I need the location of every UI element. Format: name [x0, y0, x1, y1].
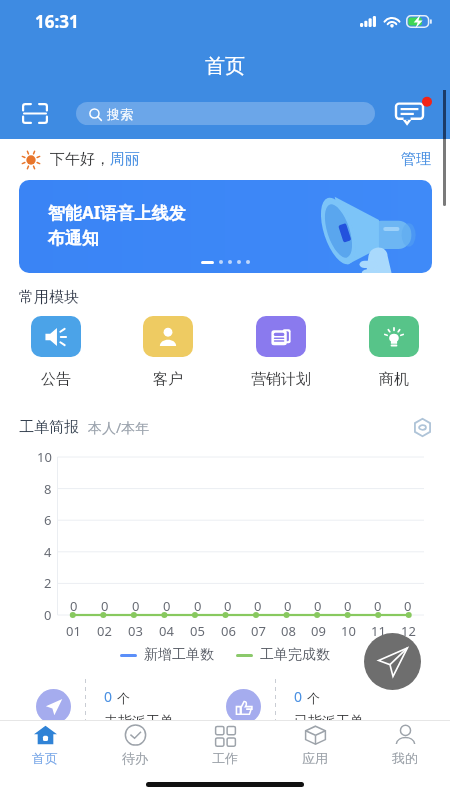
staticText: 待办 — [122, 750, 148, 766]
staticText: 客户 — [153, 370, 183, 389]
staticText: 08 — [281, 622, 296, 640]
staticText: 02 — [97, 622, 112, 640]
staticText: 我的 — [392, 750, 418, 766]
staticText: 0 — [254, 597, 262, 615]
staticText: 09 — [311, 622, 326, 640]
staticText: 首页 — [205, 54, 245, 79]
staticText: 04 — [159, 622, 174, 640]
staticText: 05 — [190, 622, 205, 640]
staticText: 06 — [221, 622, 236, 640]
staticText: 新增工单数 — [144, 646, 214, 664]
staticText: 4 — [44, 543, 52, 561]
staticText: 0 — [224, 597, 232, 615]
staticText: 0 — [44, 606, 52, 624]
button[interactable]: 智能AI语音上线发 — [19, 180, 432, 273]
staticText: 6 — [44, 511, 52, 529]
button[interactable]: 工作 — [180, 721, 270, 771]
staticText: 个 — [307, 690, 320, 706]
staticText: 16:31 — [35, 10, 79, 33]
staticText: 营销计划 — [251, 370, 311, 389]
staticText: 12 — [401, 622, 416, 640]
button[interactable]: 营销计划 — [224, 316, 337, 389]
staticText: 0 — [294, 687, 303, 706]
staticText: 8 — [44, 480, 52, 498]
button[interactable]: 应用 — [270, 721, 360, 771]
staticText: 03 — [128, 622, 143, 640]
staticText: 0 — [344, 597, 352, 615]
button[interactable]: 我的 — [360, 721, 450, 771]
staticText: 2 — [44, 574, 52, 592]
staticText: 0 — [101, 597, 109, 615]
staticText: 周丽 — [110, 150, 140, 169]
staticText: 布通知 — [48, 228, 99, 249]
button[interactable]: Settings — [410, 416, 434, 438]
staticText: 0 — [374, 597, 382, 615]
staticText: 0 — [194, 597, 202, 615]
staticText: 07 — [251, 622, 266, 640]
staticText: 首页 — [32, 750, 58, 766]
staticText: 10 — [341, 622, 356, 640]
button[interactable]: 待办 — [90, 721, 180, 771]
button[interactable]: 客户 — [112, 316, 224, 389]
staticText: 0 — [163, 597, 171, 615]
staticText: 工单简报 — [19, 418, 79, 437]
button[interactable]: Scan — [17, 97, 53, 130]
button[interactable]: Messages — [390, 93, 430, 127]
staticText: 未指派工单 — [104, 713, 174, 731]
button[interactable]: 公告 — [0, 316, 112, 389]
staticText: 工单完成数 — [260, 646, 330, 664]
button[interactable]: 商机 — [337, 316, 450, 389]
staticText: 管理 — [401, 150, 431, 169]
staticText: 本人/本年 — [88, 418, 150, 437]
staticText: 0 — [70, 597, 78, 615]
staticText: 个 — [117, 690, 130, 706]
staticText: 0 — [314, 597, 322, 615]
staticText: 0 — [284, 597, 292, 615]
button[interactable]: 首页 — [0, 721, 90, 771]
staticText: 应用 — [302, 750, 328, 766]
staticText: 0 — [404, 597, 412, 615]
staticText: 搜索 — [107, 106, 133, 122]
staticText: 0 — [132, 597, 140, 615]
button[interactable]: 0 — [20, 679, 210, 743]
staticText: 下午好， — [50, 150, 110, 169]
staticText: 0 — [104, 687, 113, 706]
staticText: 商机 — [379, 370, 409, 389]
staticText: 常用模块 — [19, 288, 79, 307]
button[interactable]: 0 — [210, 679, 400, 743]
staticText: 已指派工单 — [294, 713, 364, 731]
button[interactable]: 搜索 — [76, 102, 375, 125]
staticText: 公告 — [41, 370, 71, 389]
staticText: 10 — [37, 448, 52, 466]
button[interactable]: Send — [364, 633, 421, 690]
staticText: 工作 — [212, 750, 238, 766]
staticText: 11 — [371, 622, 386, 640]
staticText: 01 — [66, 622, 81, 640]
staticText: 智能AI语音上线发 — [48, 201, 186, 224]
button[interactable]: 管理 — [401, 150, 431, 169]
